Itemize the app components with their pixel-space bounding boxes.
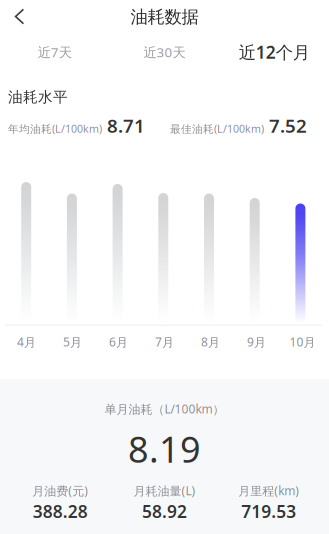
staticText: 近30天 bbox=[143, 43, 185, 61]
staticText: 单月油耗（L/100km） bbox=[104, 401, 224, 417]
staticText: 7.52 bbox=[269, 113, 307, 138]
staticText: 10月 bbox=[289, 334, 315, 350]
staticText: 6月 bbox=[109, 334, 128, 350]
staticText: 油耗水平 bbox=[8, 88, 68, 106]
staticText: 近12个月 bbox=[239, 40, 310, 63]
button[interactable]: 近7天 bbox=[0, 41, 110, 63]
staticText: 388.28 bbox=[33, 500, 88, 523]
staticText: 月耗油量(L) bbox=[133, 483, 195, 499]
staticText: 月油费(元) bbox=[32, 483, 88, 499]
staticText: 年均油耗(L/100km) bbox=[8, 122, 102, 136]
staticText: 5月 bbox=[63, 334, 82, 350]
staticText: 最佳油耗(L/100km) bbox=[170, 122, 264, 136]
staticText: 58.92 bbox=[142, 500, 187, 523]
staticText: 8.19 bbox=[128, 425, 201, 473]
staticText: 近7天 bbox=[38, 43, 72, 61]
staticText: 9月 bbox=[247, 334, 266, 350]
button[interactable]: Back bbox=[0, 0, 40, 34]
staticText: 719.53 bbox=[241, 500, 296, 523]
staticText: 8.71 bbox=[107, 113, 145, 138]
staticText: 月里程(km) bbox=[238, 483, 299, 499]
staticText: 8月 bbox=[201, 334, 220, 350]
button[interactable]: 近30天 bbox=[110, 41, 219, 63]
staticText: 7月 bbox=[155, 334, 174, 350]
staticText: 4月 bbox=[17, 334, 36, 350]
button[interactable]: 近12个月 bbox=[219, 41, 329, 63]
staticText: 油耗数据 bbox=[130, 6, 198, 28]
